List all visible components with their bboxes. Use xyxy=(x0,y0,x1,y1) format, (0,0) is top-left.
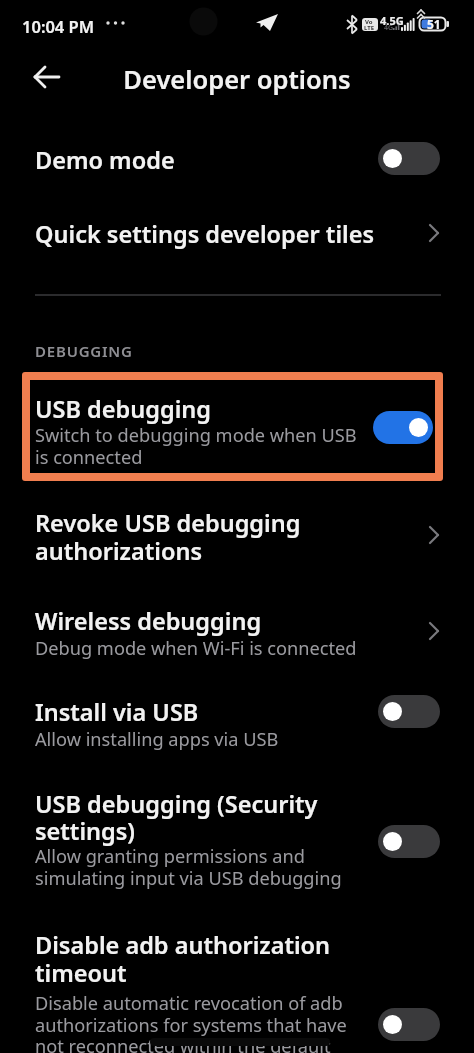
button[interactable] xyxy=(33,64,61,90)
staticText: DEBUGGING xyxy=(35,341,133,361)
button[interactable] xyxy=(0,682,474,760)
staticText: USB debugging xyxy=(35,393,212,425)
staticText: Allow installing apps via USB xyxy=(35,727,279,752)
staticText: Install via USB xyxy=(35,696,199,728)
button[interactable] xyxy=(378,825,440,858)
staticText: Switch to debugging mode when USB is con… xyxy=(35,423,357,470)
staticText: LTE xyxy=(364,24,375,31)
staticText: Disable adb authorization timeout xyxy=(35,929,331,989)
staticText: Vo xyxy=(365,18,373,26)
staticText: Allow granting permissions and simulatin… xyxy=(35,844,342,891)
button[interactable] xyxy=(0,492,474,578)
staticText: USB debugging (Security settings) xyxy=(35,788,318,847)
button[interactable] xyxy=(0,590,474,672)
button[interactable] xyxy=(378,1008,440,1041)
button[interactable] xyxy=(378,695,440,728)
staticText: Demo mode xyxy=(35,144,175,176)
staticText: Disable automatic revocation of adb auth… xyxy=(35,991,347,1053)
staticText: 51 xyxy=(427,16,441,32)
staticText: 4.5G xyxy=(380,13,404,28)
button[interactable] xyxy=(22,372,443,481)
staticText: Developer options xyxy=(0,62,474,97)
button[interactable] xyxy=(0,772,474,900)
button[interactable] xyxy=(378,142,440,175)
staticText: Revoke USB debugging authorizations xyxy=(35,507,301,566)
button[interactable] xyxy=(0,195,474,272)
staticText: 4G xyxy=(384,23,394,33)
staticText: Wireless debugging xyxy=(35,605,262,637)
button[interactable] xyxy=(373,411,433,444)
staticText: 10:04 PM xyxy=(22,15,95,37)
button[interactable] xyxy=(0,123,474,195)
button[interactable] xyxy=(0,916,474,1053)
staticText: Quick settings developer tiles xyxy=(35,218,375,250)
staticText: Debug mode when Wi-Fi is connected xyxy=(35,636,357,661)
